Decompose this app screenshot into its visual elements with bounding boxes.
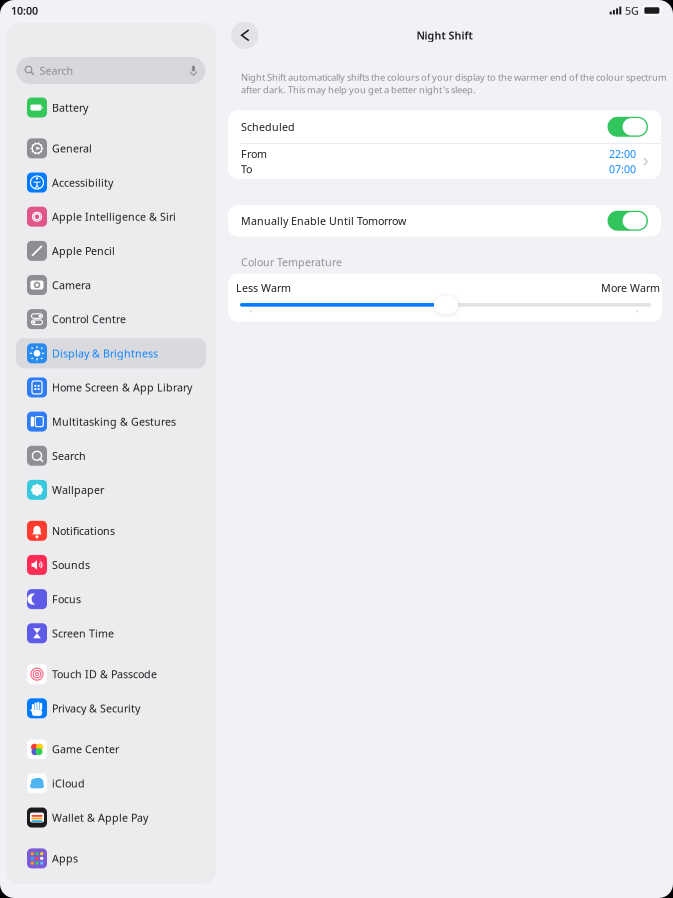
staticText: 07:00 xyxy=(609,162,636,176)
button[interactable]: iCloud xyxy=(16,768,206,798)
staticText: Apps xyxy=(52,851,78,865)
button[interactable]: Apple Pencil xyxy=(16,236,206,266)
button[interactable]: Battery xyxy=(16,92,206,122)
staticText: Camera xyxy=(52,278,91,292)
button[interactable]: Wallet & Apple Pay xyxy=(16,802,206,832)
button[interactable]: Search xyxy=(16,441,206,471)
button[interactable]: Wallpaper xyxy=(16,475,206,505)
button[interactable]: Notifications xyxy=(16,516,206,546)
staticText: To xyxy=(241,162,252,176)
button[interactable]: Back xyxy=(231,21,258,49)
staticText: Wallpaper xyxy=(52,483,104,497)
button[interactable]: Apple Intelligence & Siri xyxy=(16,202,206,232)
staticText: Apple Intelligence & Siri xyxy=(52,210,176,224)
staticText: Apple Pencil xyxy=(52,244,115,258)
staticText: Less Warm xyxy=(236,281,291,295)
button[interactable]: Focus xyxy=(16,584,206,614)
staticText: Multitasking & Gestures xyxy=(52,414,176,429)
button[interactable]: Scheduled xyxy=(228,110,661,143)
staticText: Privacy & Security xyxy=(52,701,140,715)
staticText: 22:00 xyxy=(609,147,636,161)
staticText: More Warm xyxy=(601,281,660,295)
staticText: General xyxy=(52,141,92,155)
button[interactable]: Home Screen & App Library xyxy=(16,372,206,402)
button[interactable]: Manually Enable Until Tomorrow xyxy=(228,205,661,236)
button[interactable]: Display & Brightness xyxy=(16,338,206,368)
button[interactable]: Apps xyxy=(16,843,206,873)
staticText: Screen Time xyxy=(52,626,114,640)
button[interactable]: Game Center xyxy=(16,734,206,764)
staticText: Battery xyxy=(52,100,88,115)
button[interactable]: Privacy & Security xyxy=(16,693,206,723)
staticText: Control Centre xyxy=(52,312,126,326)
button[interactable]: Screen Time xyxy=(16,618,206,648)
staticText: 10:00 xyxy=(11,3,38,18)
button[interactable]: General xyxy=(16,133,206,163)
button[interactable]: Touch ID & Passcode xyxy=(16,659,206,689)
staticText: Wallet & Apple Pay xyxy=(52,810,148,825)
staticText: Game Center xyxy=(52,742,119,756)
button[interactable]: From xyxy=(228,144,661,179)
button[interactable]: Control Centre xyxy=(16,304,206,334)
staticText: Home Screen & App Library xyxy=(52,380,192,395)
staticText: Night Shift automatically shifts the col… xyxy=(241,71,667,96)
staticText: Accessibility xyxy=(52,175,113,190)
staticText: Manually Enable Until Tomorrow xyxy=(241,214,406,228)
staticText: From xyxy=(241,147,267,161)
staticText: Night Shift xyxy=(416,28,472,42)
staticText: Colour Temperature xyxy=(241,255,342,269)
staticText: iCloud xyxy=(52,776,85,790)
staticText: Search xyxy=(52,449,86,463)
staticText: Scheduled xyxy=(241,120,295,134)
staticText: Display & Brightness xyxy=(52,346,158,360)
staticText: Search xyxy=(39,63,73,78)
button[interactable]: Accessibility xyxy=(16,168,206,198)
staticText: Touch ID & Passcode xyxy=(52,667,157,681)
button[interactable]: Sounds xyxy=(16,550,206,580)
staticText: Notifications xyxy=(52,524,115,538)
staticText: 5G xyxy=(625,3,639,18)
staticText: Sounds xyxy=(52,558,90,572)
button[interactable]: Multitasking & Gestures xyxy=(16,407,206,437)
button[interactable]: Camera xyxy=(16,270,206,300)
staticText: Focus xyxy=(52,592,81,606)
